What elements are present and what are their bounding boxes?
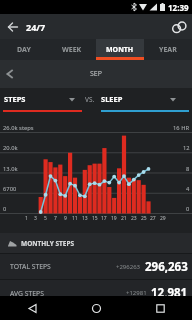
staticText: 1 (25, 215, 28, 222)
staticText: 25 (141, 215, 147, 222)
button[interactable] (171, 20, 187, 34)
button[interactable]: SEP (0, 60, 192, 88)
staticText: 7 (54, 215, 57, 222)
staticText: 17 (101, 215, 107, 222)
button[interactable] (128, 296, 192, 320)
staticText: 0 (3, 205, 7, 213)
staticText: VS. (85, 95, 95, 104)
staticText: YEAR (159, 45, 177, 55)
staticText: 27 (150, 215, 156, 222)
button[interactable]: MONTH (96, 39, 144, 60)
button[interactable]: 24/7 (0, 14, 192, 39)
staticText: 19 (111, 215, 117, 222)
staticText: 21 (121, 215, 127, 222)
staticText: +296263 (116, 263, 141, 271)
staticText: MONTH (106, 45, 134, 55)
staticText: DAY (17, 45, 31, 55)
staticText: 24/7 (26, 21, 46, 33)
button[interactable]: DAY (0, 39, 48, 60)
staticText: TOTAL STEPS (10, 262, 51, 271)
staticText: 3 (34, 215, 37, 222)
button[interactable]: WEEK (48, 39, 96, 60)
staticText: 15 (92, 215, 98, 222)
staticText: MONTHLY STEPS (21, 239, 75, 248)
staticText: SLEEP (101, 94, 123, 104)
staticText: 4 (186, 185, 190, 193)
staticText: WEEK (62, 45, 82, 55)
staticText: 13 (82, 215, 88, 222)
staticText: 296,263 (145, 259, 188, 275)
staticText: STEPS (4, 94, 26, 104)
staticText: 0 (186, 205, 190, 213)
staticText: 16 HR (173, 124, 190, 132)
staticText: 12 (183, 144, 190, 152)
button[interactable]: AVG STEPS (0, 280, 192, 296)
staticText: AVG STEPS (10, 289, 44, 298)
staticText: 23 (131, 215, 137, 222)
button[interactable]: MONTHLY STEPS (0, 233, 192, 253)
staticText: 20.0k (3, 144, 18, 152)
staticText: 9 (64, 215, 67, 222)
button[interactable] (0, 296, 64, 320)
staticText: 8 (186, 165, 190, 173)
staticText: 5 (44, 215, 47, 222)
button[interactable]: STEPS (0, 88, 85, 114)
staticText: +12981 (126, 289, 147, 297)
button[interactable]: TOTAL STEPS (0, 254, 192, 279)
button[interactable]: SLEEP (100, 88, 192, 114)
staticText: 26.0k steps (3, 124, 34, 132)
staticText: 6700 (3, 185, 17, 193)
staticText: 12:39 (168, 2, 189, 13)
staticText: SEP (90, 69, 102, 79)
button[interactable] (64, 296, 128, 320)
staticText: 11 (72, 215, 78, 222)
staticText: 12,981 (151, 285, 188, 301)
button[interactable]: YEAR (144, 39, 192, 60)
staticText: 13.0k (3, 165, 18, 173)
staticText: 29 (160, 215, 166, 222)
